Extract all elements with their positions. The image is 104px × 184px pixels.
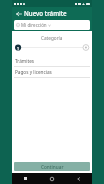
button[interactable]: Pagos y licencias bbox=[12, 67, 92, 77]
button[interactable]: Back bbox=[14, 9, 23, 18]
staticText: Continuar bbox=[41, 164, 64, 170]
staticText: Trámites bbox=[15, 58, 35, 64]
button[interactable]: Back bbox=[65, 173, 92, 184]
button[interactable]: Continuar bbox=[14, 162, 90, 171]
button[interactable]: Trámites bbox=[12, 56, 92, 66]
staticText: 1 bbox=[17, 46, 19, 51]
button[interactable]: Recents bbox=[12, 173, 38, 184]
button[interactable]: Home bbox=[38, 173, 65, 184]
staticText: Categoría bbox=[41, 35, 63, 41]
staticText: Nuevo trámite bbox=[24, 9, 67, 17]
button[interactable]: Mi dirección bbox=[14, 20, 90, 30]
staticText: Pagos y licencias bbox=[15, 69, 52, 75]
staticText: Mi dirección bbox=[21, 22, 47, 28]
